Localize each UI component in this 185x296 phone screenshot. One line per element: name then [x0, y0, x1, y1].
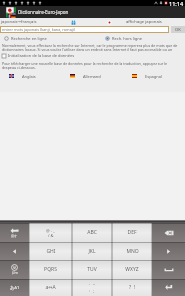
staticText: WXYZ: [125, 266, 139, 273]
button[interactable]: Move right: [152, 242, 185, 260]
button[interactable]: Switch input mode: [0, 279, 29, 296]
staticText: 戻す: [11, 234, 18, 238]
staticText: Pour télécharger une nouvelle base de do…: [2, 61, 182, 70]
button[interactable]: Allemand: [61, 70, 123, 82]
button[interactable]: Undo: [0, 223, 29, 242]
staticText: JKL: [88, 248, 96, 255]
button[interactable]: ' ": [72, 279, 112, 296]
staticText: Recherche en ligne: [11, 36, 47, 41]
button[interactable]: Rech. hors ligne: [105, 35, 142, 42]
staticText: MNO: [126, 248, 139, 255]
staticText: Espagnol: [145, 74, 163, 79]
button[interactable]: TUV: [72, 260, 112, 279]
button[interactable]: @ - _: [29, 223, 72, 242]
staticText: @ - _: [46, 228, 55, 233]
staticText: TUV: [87, 266, 97, 273]
button[interactable]: JKL: [72, 242, 112, 260]
staticText: Rech. hors ligne: [112, 36, 142, 41]
button[interactable]: Backspace: [152, 223, 185, 242]
other: App icon: [6, 7, 16, 18]
other: Account: [71, 20, 76, 25]
button[interactable]: Espagnol: [123, 70, 185, 82]
button[interactable]: ABC: [72, 223, 112, 242]
button[interactable]: Anglais: [0, 70, 61, 82]
staticText: : ;: [89, 288, 95, 293]
staticText: Normalement, vous effectuez la recherche…: [2, 43, 182, 52]
staticText: PQRS: [44, 266, 57, 273]
staticText: ABC: [87, 229, 97, 236]
staticText: DEF: [127, 229, 137, 236]
staticText: GHI: [46, 248, 56, 255]
staticText: Dictionnaire-Euro-Japon: [18, 9, 69, 15]
staticText: / &: [48, 233, 54, 238]
button[interactable]: Space: [152, 260, 185, 279]
button[interactable]: Recherche en ligne: [4, 35, 47, 42]
button[interactable]: PQRS: [29, 260, 72, 279]
staticText: entrer mots japonais (kanji, kana, romaj…: [2, 27, 75, 32]
other: Left: [10, 247, 19, 256]
staticText: a⇔A: [45, 284, 56, 291]
staticText: ? !: [129, 284, 136, 291]
staticText: 11:14: [169, 0, 184, 6]
button[interactable]: Enter: [152, 279, 185, 296]
button[interactable]: affichage japonais: [107, 19, 162, 25]
staticText: ' ": [89, 283, 95, 288]
staticText: Allemand: [83, 74, 101, 79]
staticText: あA1: [10, 285, 20, 291]
button[interactable]: a⇔A: [29, 279, 72, 296]
button[interactable]: ? !: [112, 279, 152, 296]
button[interactable]: Move left: [0, 242, 29, 260]
button[interactable]: entrer mots japonais (kanji, kana, romaj…: [0, 26, 169, 33]
button[interactable]: WXYZ: [112, 260, 152, 279]
staticText: 記号: [12, 271, 18, 275]
staticText: Anglais: [22, 74, 36, 79]
button[interactable]: MNO: [112, 242, 152, 260]
staticText: OK: [175, 27, 181, 33]
staticText: Initialisation de la base de données: [8, 53, 75, 58]
button[interactable]: GHI: [29, 242, 72, 260]
button[interactable]: japonais→français: [1, 19, 37, 25]
button[interactable]: Initialisation de la base de données: [0, 52, 185, 59]
button[interactable]: OK: [171, 26, 185, 33]
button[interactable]: DEF: [112, 223, 152, 242]
staticText: affichage japonais: [126, 19, 162, 25]
button[interactable]: Symbols: [0, 260, 29, 279]
